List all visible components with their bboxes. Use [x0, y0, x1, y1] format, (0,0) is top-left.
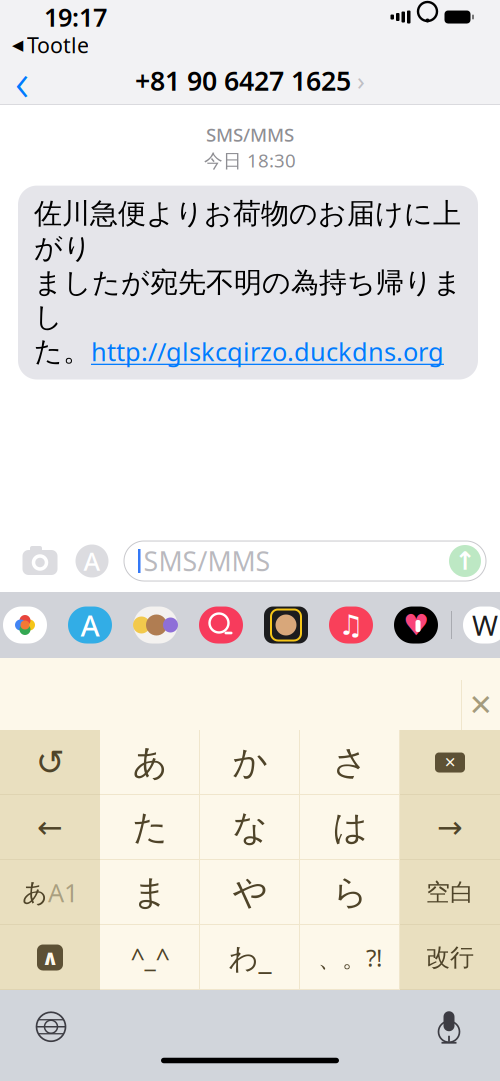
staticText: 今日 18:30	[204, 148, 296, 173]
staticText: 19:17	[44, 0, 107, 34]
button[interactable]: Activity	[394, 606, 438, 643]
staticText: ♫	[338, 609, 363, 641]
button[interactable]: は	[300, 795, 400, 860]
staticText: 、。?!	[318, 941, 382, 973]
staticText: わ_	[228, 938, 271, 977]
button[interactable]: Images	[199, 606, 243, 643]
button[interactable]: Space	[400, 860, 500, 925]
staticText: W	[472, 606, 498, 644]
staticText: あ	[22, 877, 48, 908]
staticText: ↑	[454, 547, 475, 575]
button[interactable]: Move left	[0, 795, 100, 860]
button[interactable]: ◀	[0, 29, 89, 61]
staticText: さ	[332, 741, 367, 784]
button[interactable]: ^_^	[100, 925, 200, 990]
button[interactable]: 、。?!	[300, 925, 400, 990]
button[interactable]: た	[100, 795, 200, 860]
staticText: A	[80, 605, 99, 644]
staticText: ←	[37, 810, 63, 845]
staticText: SMS/MMS	[206, 122, 294, 147]
staticText: や	[232, 871, 267, 914]
button[interactable]: Photos	[3, 606, 47, 643]
staticText: ^_^	[130, 941, 169, 974]
button[interactable]: App Store	[68, 605, 112, 644]
button[interactable]: Dictation	[423, 1001, 475, 1053]
button[interactable]: な	[200, 795, 300, 860]
staticText: は	[332, 806, 367, 849]
staticText: http://glskcqirzo.duckdns.org	[91, 334, 444, 368]
button[interactable]: More apps	[463, 606, 500, 644]
staticText: ♥	[403, 608, 429, 642]
button[interactable]: Stickers	[133, 606, 178, 643]
button[interactable]: http://glskcqirzo.duckdns.org	[91, 334, 444, 368]
staticText: →	[437, 810, 463, 845]
staticText: 佐川急便よりお荷物のお届けに上がり	[34, 197, 461, 265]
button[interactable]: Next keyboard	[25, 1001, 77, 1053]
button[interactable]: Switch input mode	[0, 860, 100, 925]
staticText: ましたが宛先不明の為持ち帰りまし	[34, 265, 462, 334]
button[interactable]: さ	[300, 730, 400, 795]
button[interactable]: Memoji	[264, 606, 308, 643]
staticText: た	[132, 806, 167, 849]
button[interactable]: Move right	[400, 795, 500, 860]
staticText: な	[232, 806, 267, 849]
button[interactable]: Camera	[17, 538, 63, 584]
staticText: ✕	[444, 754, 456, 771]
button[interactable]: か	[200, 730, 300, 795]
staticText: た。	[34, 334, 91, 368]
staticText: ›	[357, 64, 365, 97]
staticText: ま	[132, 871, 167, 914]
staticText: A	[83, 544, 100, 578]
button[interactable]: Back	[0, 58, 44, 102]
staticText: SMS/MMS	[143, 543, 270, 579]
button[interactable]: ま	[100, 860, 200, 925]
staticText: ✕	[468, 688, 493, 722]
staticText: ‹	[15, 45, 29, 116]
button[interactable]: Delete	[400, 730, 500, 795]
staticText: A1	[48, 876, 78, 909]
staticText: ∧	[41, 945, 58, 970]
staticText: あ	[132, 741, 167, 784]
staticText: +81 90 6427 1625	[135, 63, 351, 98]
button[interactable]: Undo	[0, 730, 100, 795]
button[interactable]: Apps	[69, 538, 115, 584]
staticText: 空白	[426, 878, 474, 907]
staticText: 改行	[426, 943, 474, 972]
button[interactable]: や	[200, 860, 300, 925]
button[interactable]: +81 90 6427 1625	[135, 59, 365, 102]
button[interactable]: Hide keyboard	[0, 925, 100, 990]
staticText: Tootle	[27, 31, 89, 59]
button[interactable]: あ	[100, 730, 200, 795]
staticText: ら	[332, 871, 367, 914]
staticText: か	[232, 741, 267, 784]
staticText: ↺	[35, 743, 64, 782]
button[interactable]: わ_	[200, 925, 300, 990]
button[interactable]: Close suggestions	[462, 680, 500, 730]
button[interactable]: Return	[400, 925, 500, 990]
button[interactable]: Send	[449, 545, 481, 577]
button[interactable]: ら	[300, 860, 400, 925]
button[interactable]: Music	[329, 606, 373, 643]
staticText: ◀	[12, 37, 23, 53]
